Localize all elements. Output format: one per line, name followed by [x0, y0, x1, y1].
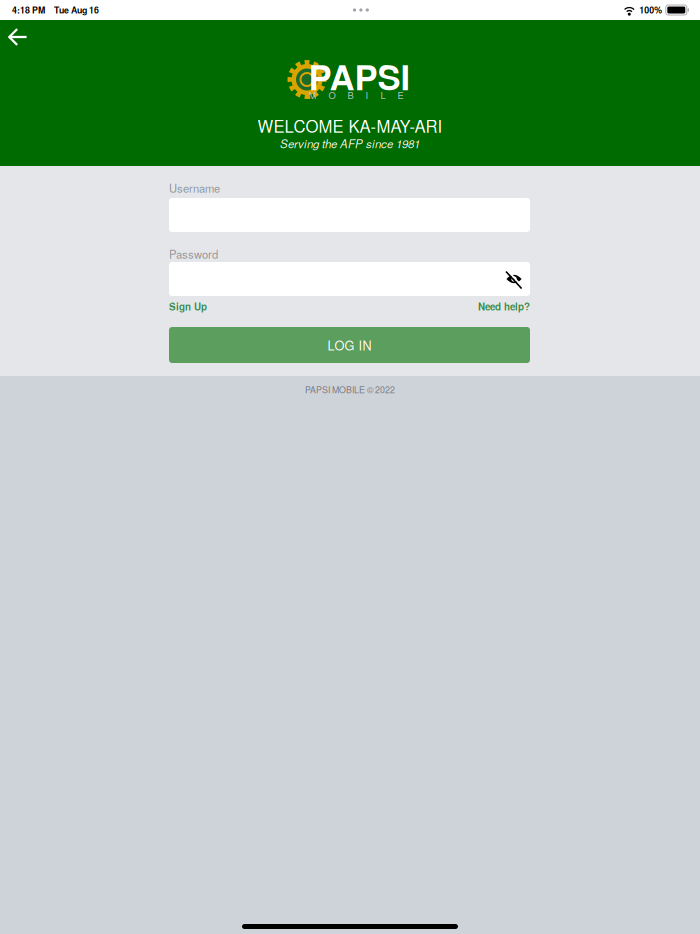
staticText: M O B I L E [308, 88, 403, 102]
staticText: Sign Up [169, 299, 207, 313]
button[interactable]: Show password [506, 272, 530, 286]
staticText: Serving the AFP since 1981 [280, 135, 420, 152]
staticText: Need help? [478, 299, 530, 313]
button[interactable]: LOG IN [169, 327, 530, 363]
button[interactable]: Back [0, 20, 38, 57]
staticText: Username [169, 180, 220, 196]
staticText: LOG IN [327, 336, 371, 354]
button[interactable]: Sign Up [169, 299, 207, 314]
staticText: PAPSI MOBILE © 2022 [305, 383, 395, 396]
staticText: WELCOME KA-MAY-ARI [257, 114, 442, 137]
staticText: 4:18 PM [12, 4, 45, 16]
staticText: PAPSI [308, 51, 410, 101]
staticText: Password [169, 246, 218, 262]
button[interactable]: Need help? [478, 299, 530, 314]
staticText: Tue Aug 16 [54, 4, 99, 16]
staticText: 100% [639, 4, 662, 16]
